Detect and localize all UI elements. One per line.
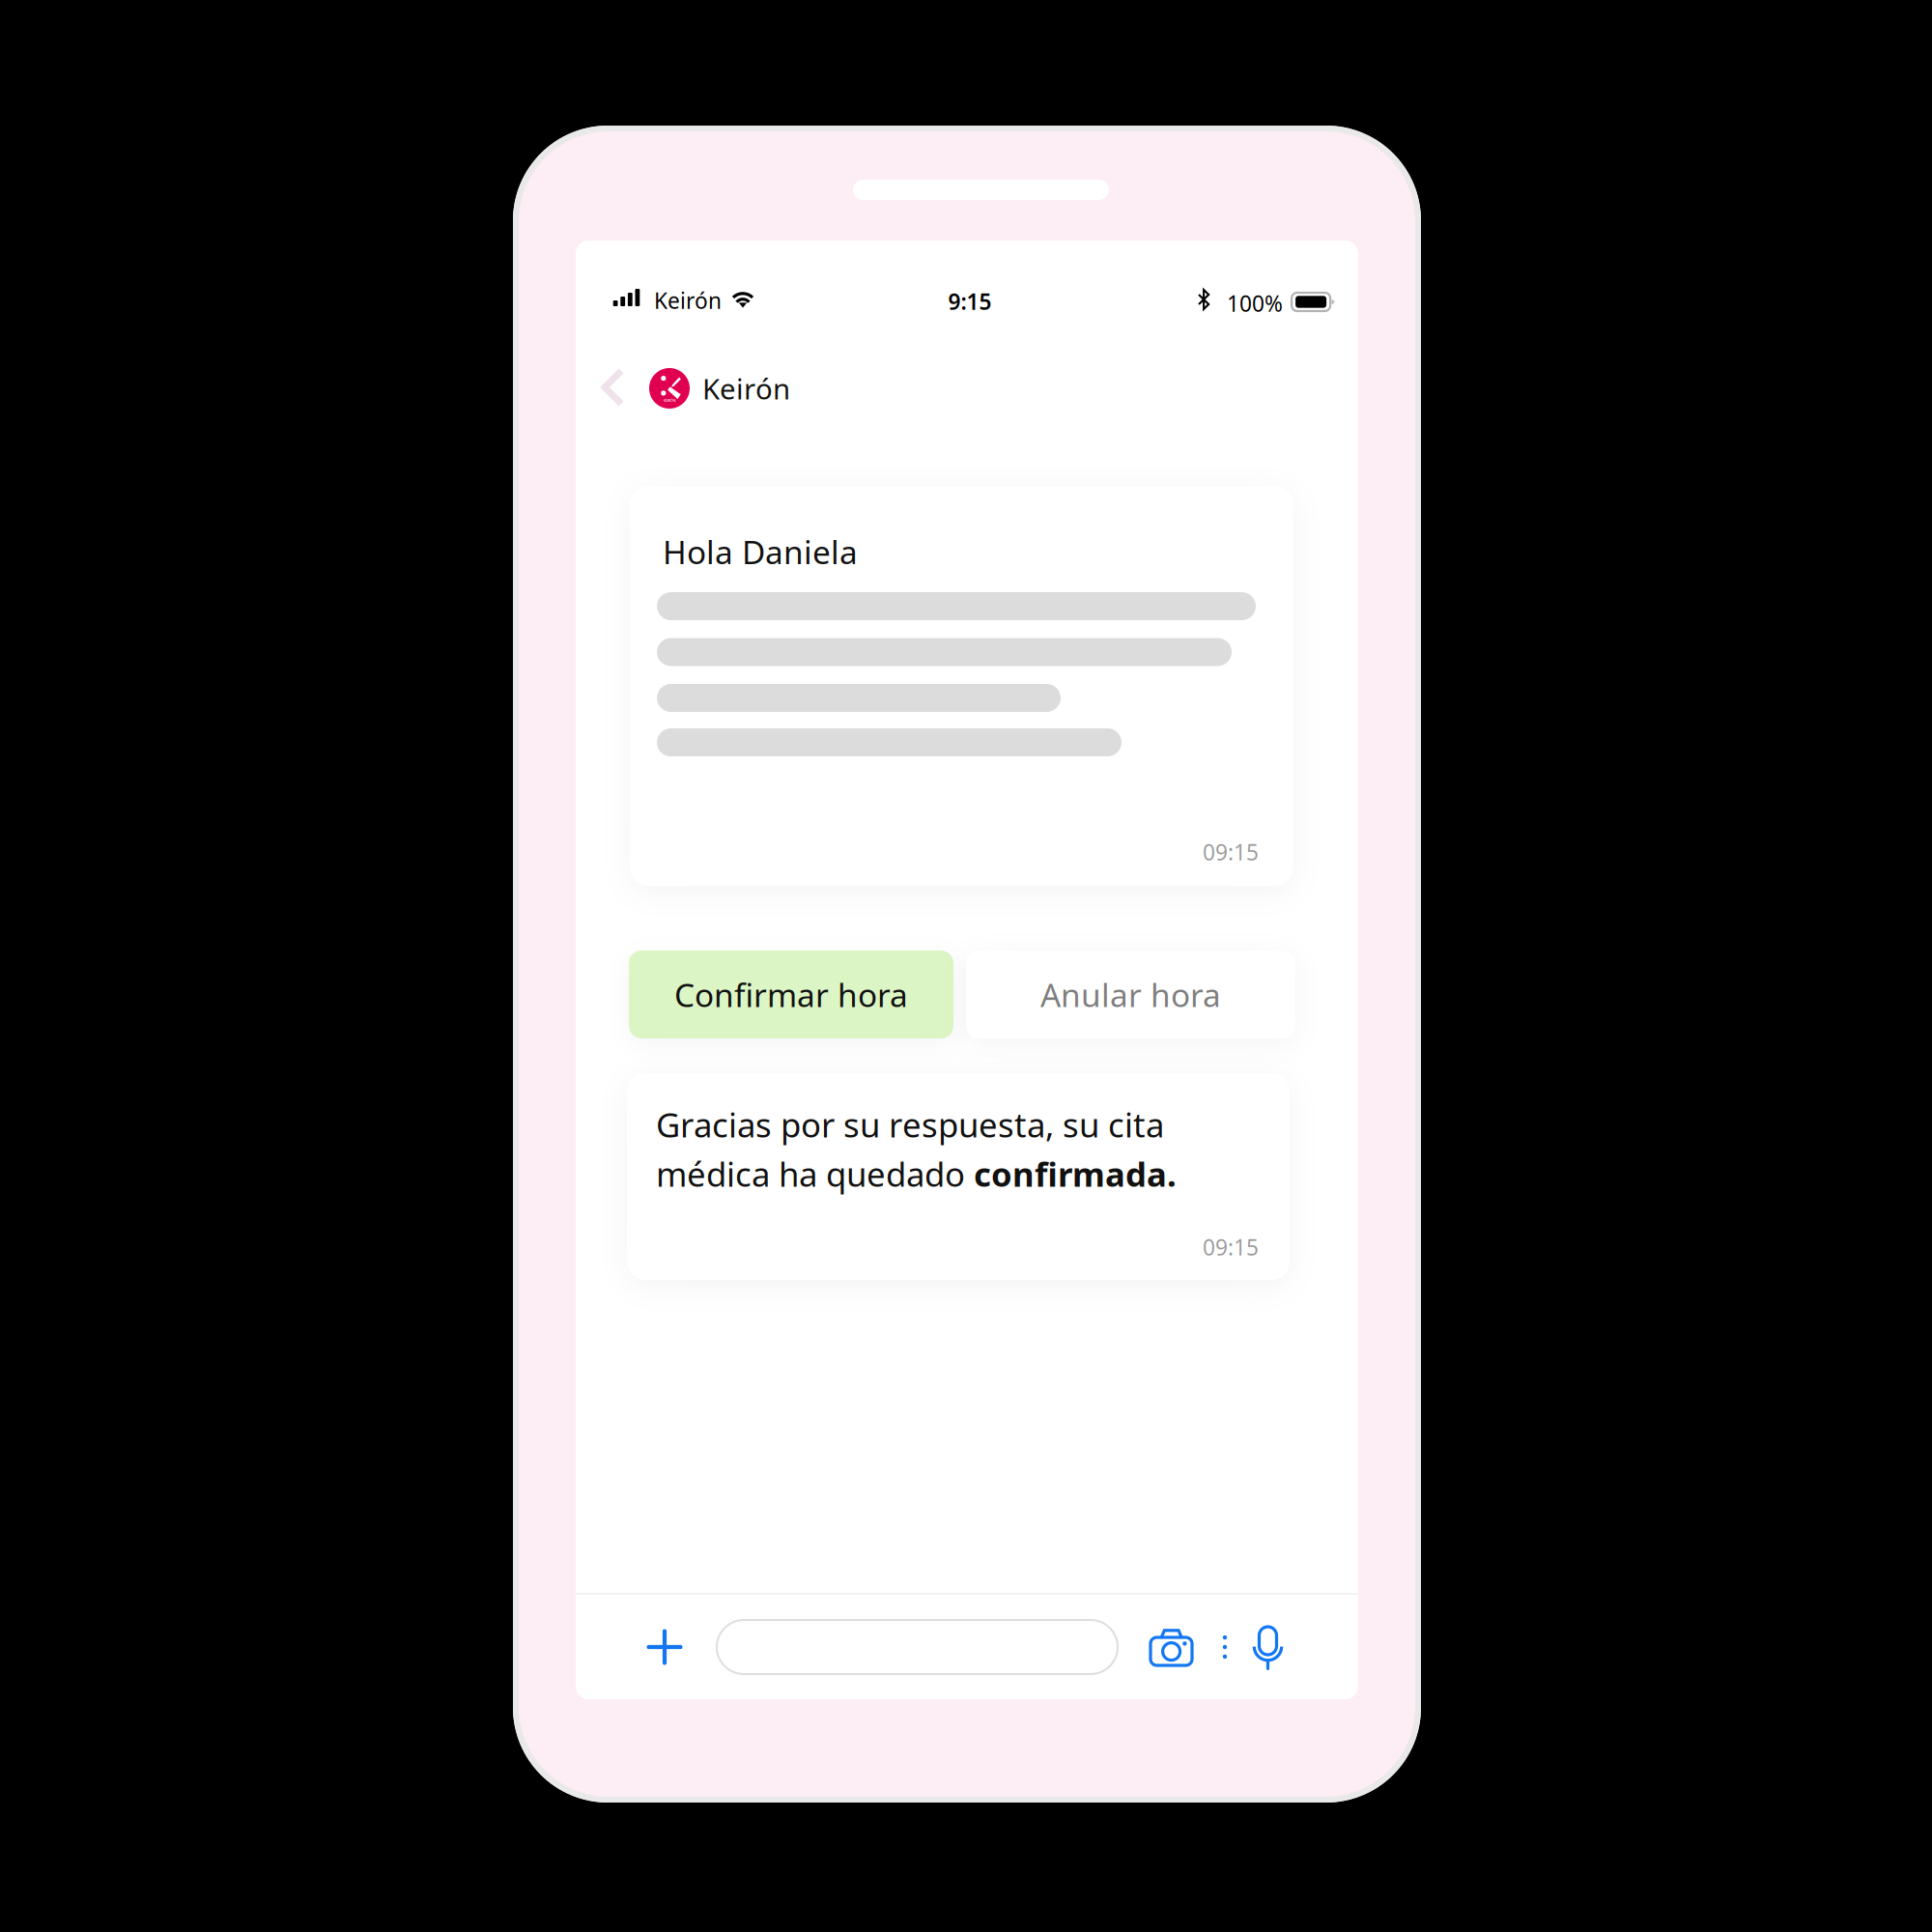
button[interactable]: Add attachment xyxy=(645,1628,684,1666)
button[interactable]: Anular hora xyxy=(966,951,1295,1038)
staticText: Anular hora xyxy=(1040,973,1221,1016)
staticText: 9:15 xyxy=(948,287,992,316)
staticText: 100% xyxy=(1227,289,1283,318)
staticText: Gracias por su respuesta, su cita xyxy=(656,1102,1164,1147)
button[interactable]: Back xyxy=(587,355,639,420)
staticText: Confirmar hora xyxy=(674,973,908,1016)
staticText: Hola Daniela xyxy=(663,530,858,573)
staticText: médica ha quedado xyxy=(656,1151,974,1196)
staticText: Keirón xyxy=(702,369,790,407)
button[interactable]: Confirmar hora xyxy=(629,951,953,1038)
button[interactable]: KEIRÓN xyxy=(649,359,790,417)
staticText: confirmada. xyxy=(974,1151,1177,1196)
button[interactable]: Voice message xyxy=(1254,1627,1283,1671)
button[interactable]: More options xyxy=(1218,1634,1232,1660)
staticText: 09:15 xyxy=(1203,1233,1259,1262)
button[interactable]: Message xyxy=(717,1620,1118,1674)
staticText: 09:15 xyxy=(1203,837,1259,867)
button[interactable]: Camera xyxy=(1151,1629,1192,1665)
staticText: Keirón xyxy=(654,286,722,315)
staticText: KEIRÓN xyxy=(663,398,676,403)
